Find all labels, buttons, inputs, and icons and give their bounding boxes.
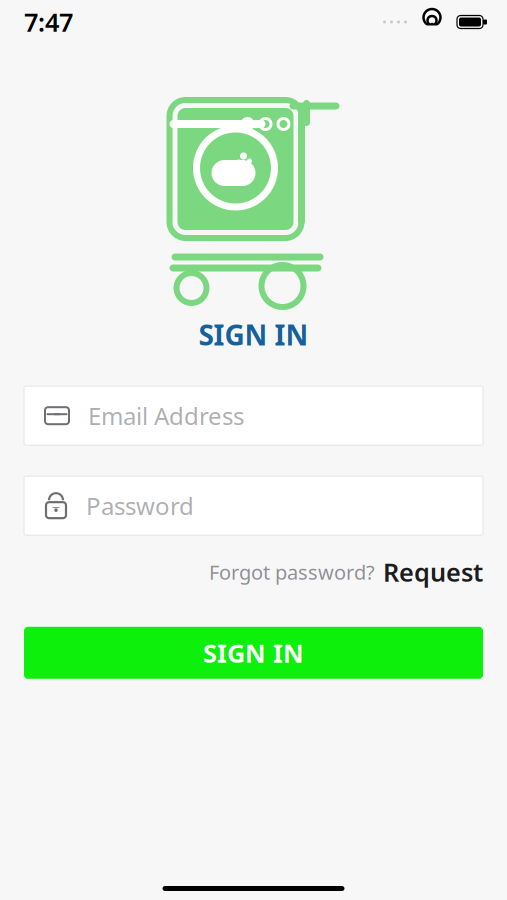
staticText: 7:47	[24, 5, 73, 39]
button[interactable]: Email Address	[24, 386, 483, 445]
staticText: SIGN IN	[198, 316, 308, 353]
staticText: Request	[383, 555, 483, 589]
staticText: Forgot password?	[209, 559, 375, 585]
staticText: SIGN IN	[203, 636, 304, 670]
button[interactable]: Request	[383, 555, 483, 589]
staticText: Email Address	[88, 400, 244, 432]
staticText: Password	[86, 490, 194, 522]
button[interactable]: Password	[24, 476, 483, 535]
button[interactable]: SIGN IN	[24, 627, 483, 679]
